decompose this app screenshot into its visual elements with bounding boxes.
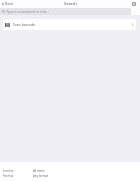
staticText: Limit to: [3, 169, 15, 173]
staticText: Type in a keyword or title... [6, 9, 50, 14]
staticText: Format: [3, 174, 14, 178]
button[interactable]: Type in a keyword or title... [0, 8, 131, 15]
button[interactable]: Camera search [132, 2, 136, 6]
staticText: Search [64, 1, 77, 6]
staticText: Scan barcode [13, 22, 36, 27]
button[interactable]: Limit to: [0, 168, 140, 173]
staticText: All items [33, 169, 45, 173]
button[interactable]: Format: [0, 173, 140, 178]
button[interactable]: Back [0, 0, 16, 7]
button[interactable]: Scan barcode [3, 19, 136, 30]
staticText: Any format [33, 174, 49, 178]
staticText: Back [5, 1, 14, 6]
